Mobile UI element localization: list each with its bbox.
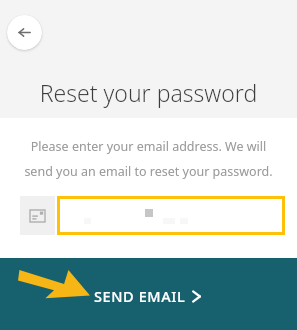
staticText: Please enter your email address. We will… <box>16 138 281 179</box>
button[interactable]: SEND EMAIL <box>0 258 297 330</box>
button[interactable]: Email address field <box>57 196 285 235</box>
staticText: Reset your password <box>0 77 297 108</box>
button[interactable]: Back <box>7 15 42 50</box>
staticText: SEND EMAIL <box>94 286 186 306</box>
